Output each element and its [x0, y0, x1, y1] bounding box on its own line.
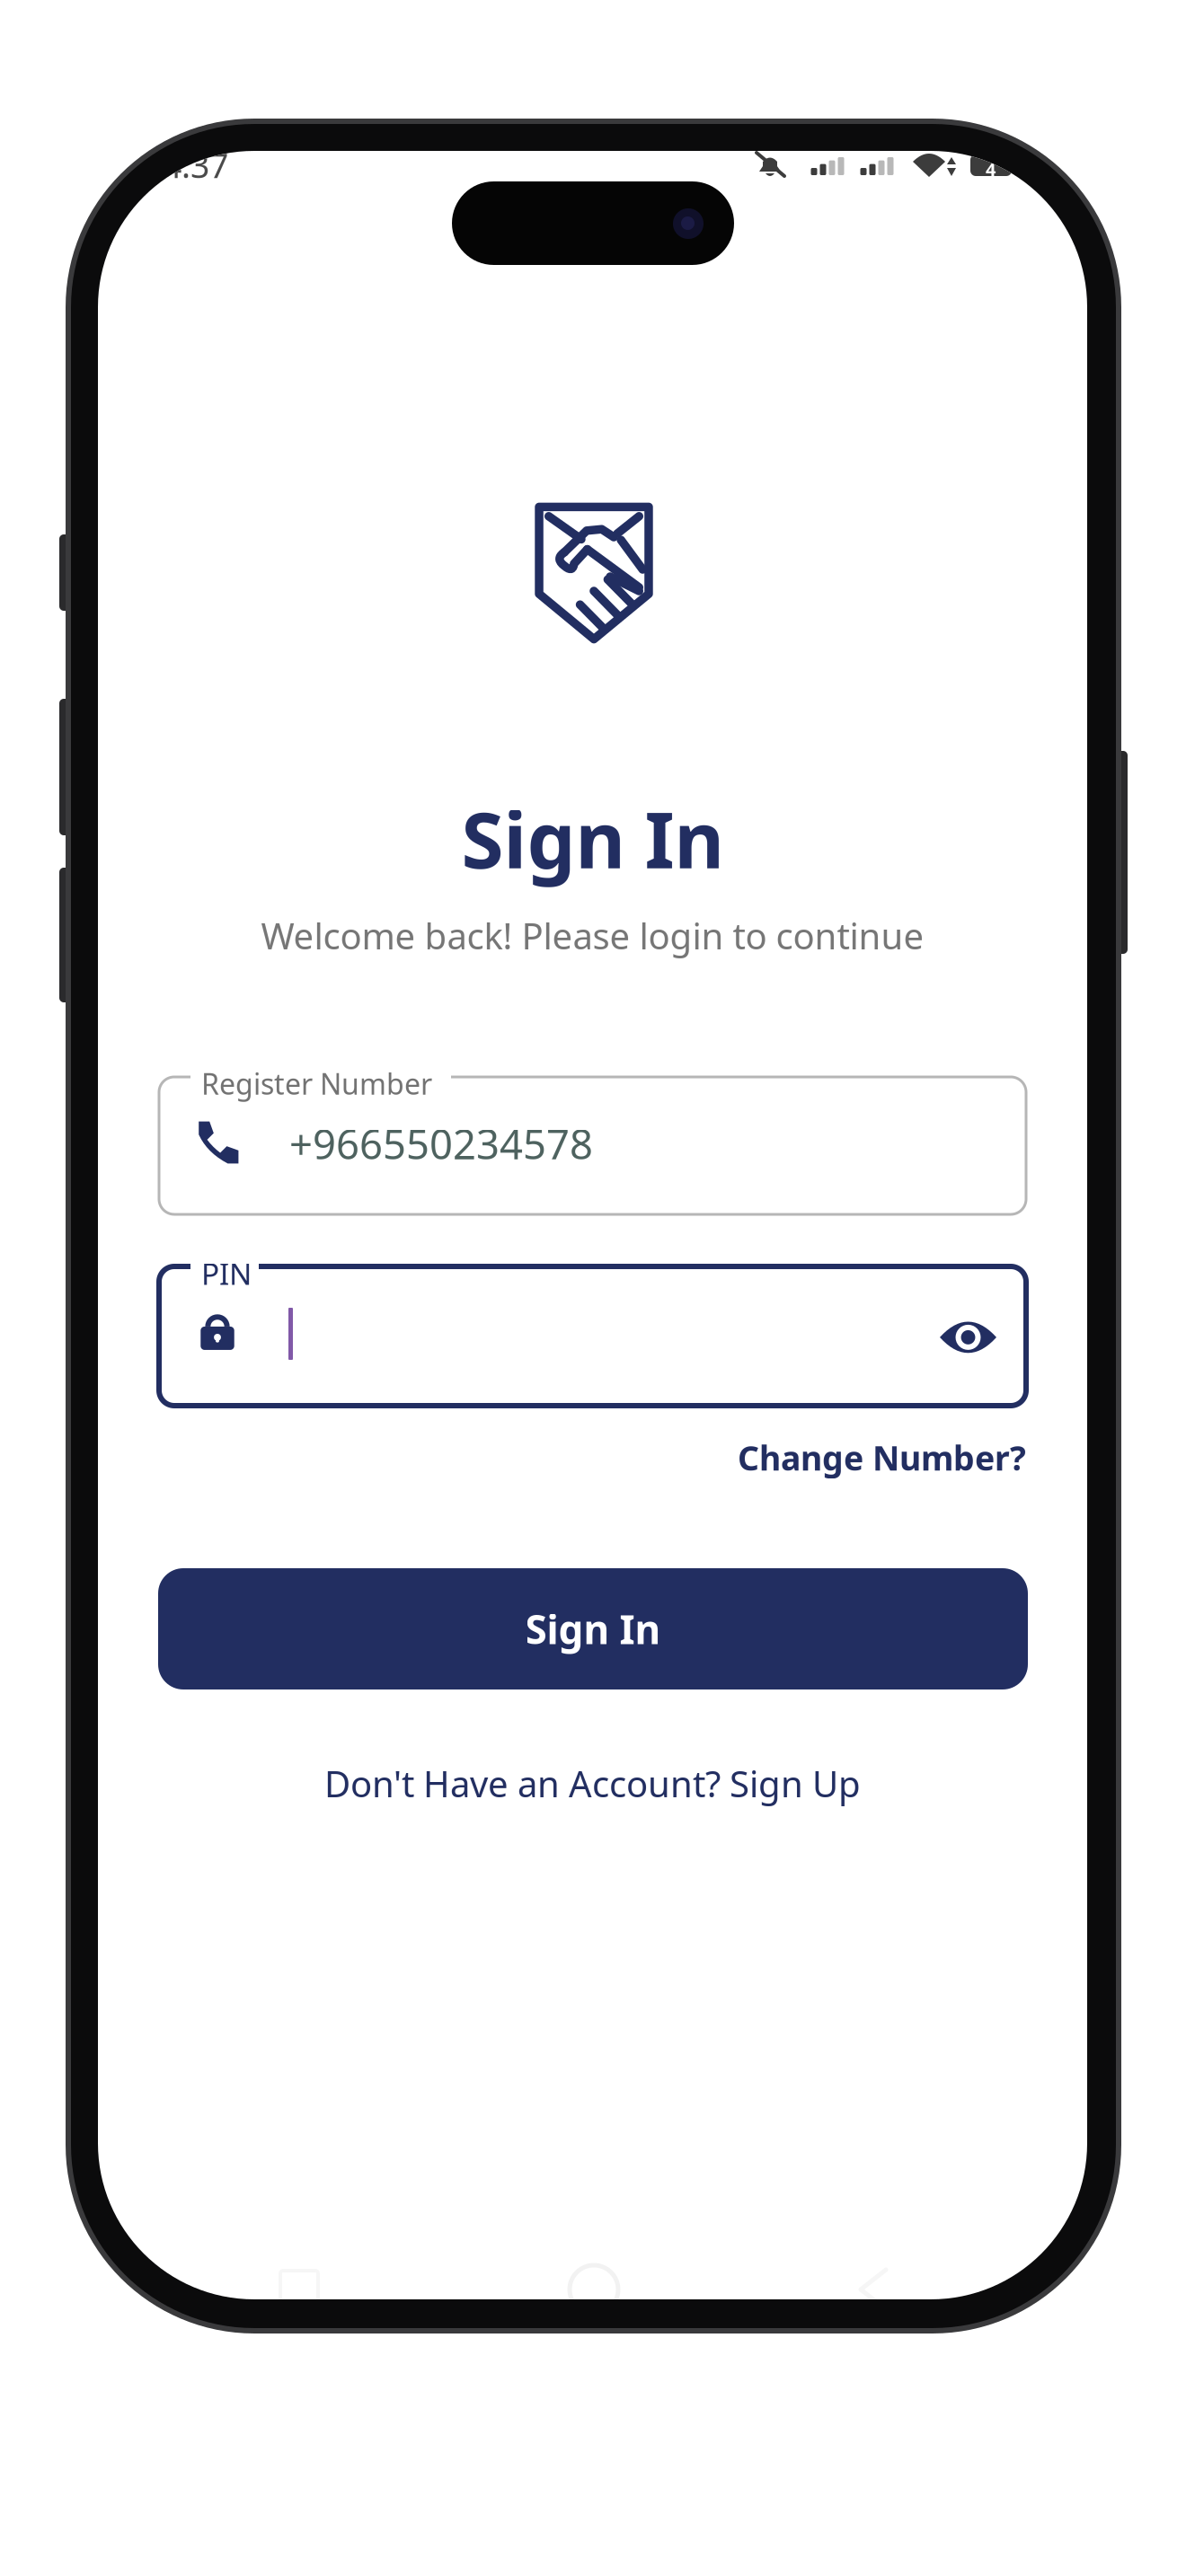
staticText: Change Number?: [738, 1435, 1026, 1480]
staticText: Welcome back! Please login to continue: [261, 912, 924, 959]
staticText: +966550234578: [289, 1116, 593, 1171]
staticText: PIN: [201, 1253, 252, 1293]
button[interactable]: PIN: [159, 1266, 1026, 1406]
button[interactable]: Change Number?: [159, 1435, 1026, 1480]
staticText: Don't Have an Account? Sign Up: [324, 1760, 861, 1807]
button[interactable]: Back: [855, 2270, 893, 2309]
staticText: Sign In: [525, 1603, 661, 1655]
button[interactable]: Recents: [280, 2271, 318, 2308]
staticText: Register Number: [201, 1064, 432, 1103]
button[interactable]: Home: [570, 2265, 618, 2314]
button[interactable]: Sign In: [158, 1568, 1028, 1689]
staticText: Sign In: [461, 788, 724, 889]
button[interactable]: Don't Have an Account? Sign Up: [98, 1760, 1087, 1807]
staticText: 4.37: [163, 143, 228, 187]
staticText: 4: [986, 157, 996, 181]
